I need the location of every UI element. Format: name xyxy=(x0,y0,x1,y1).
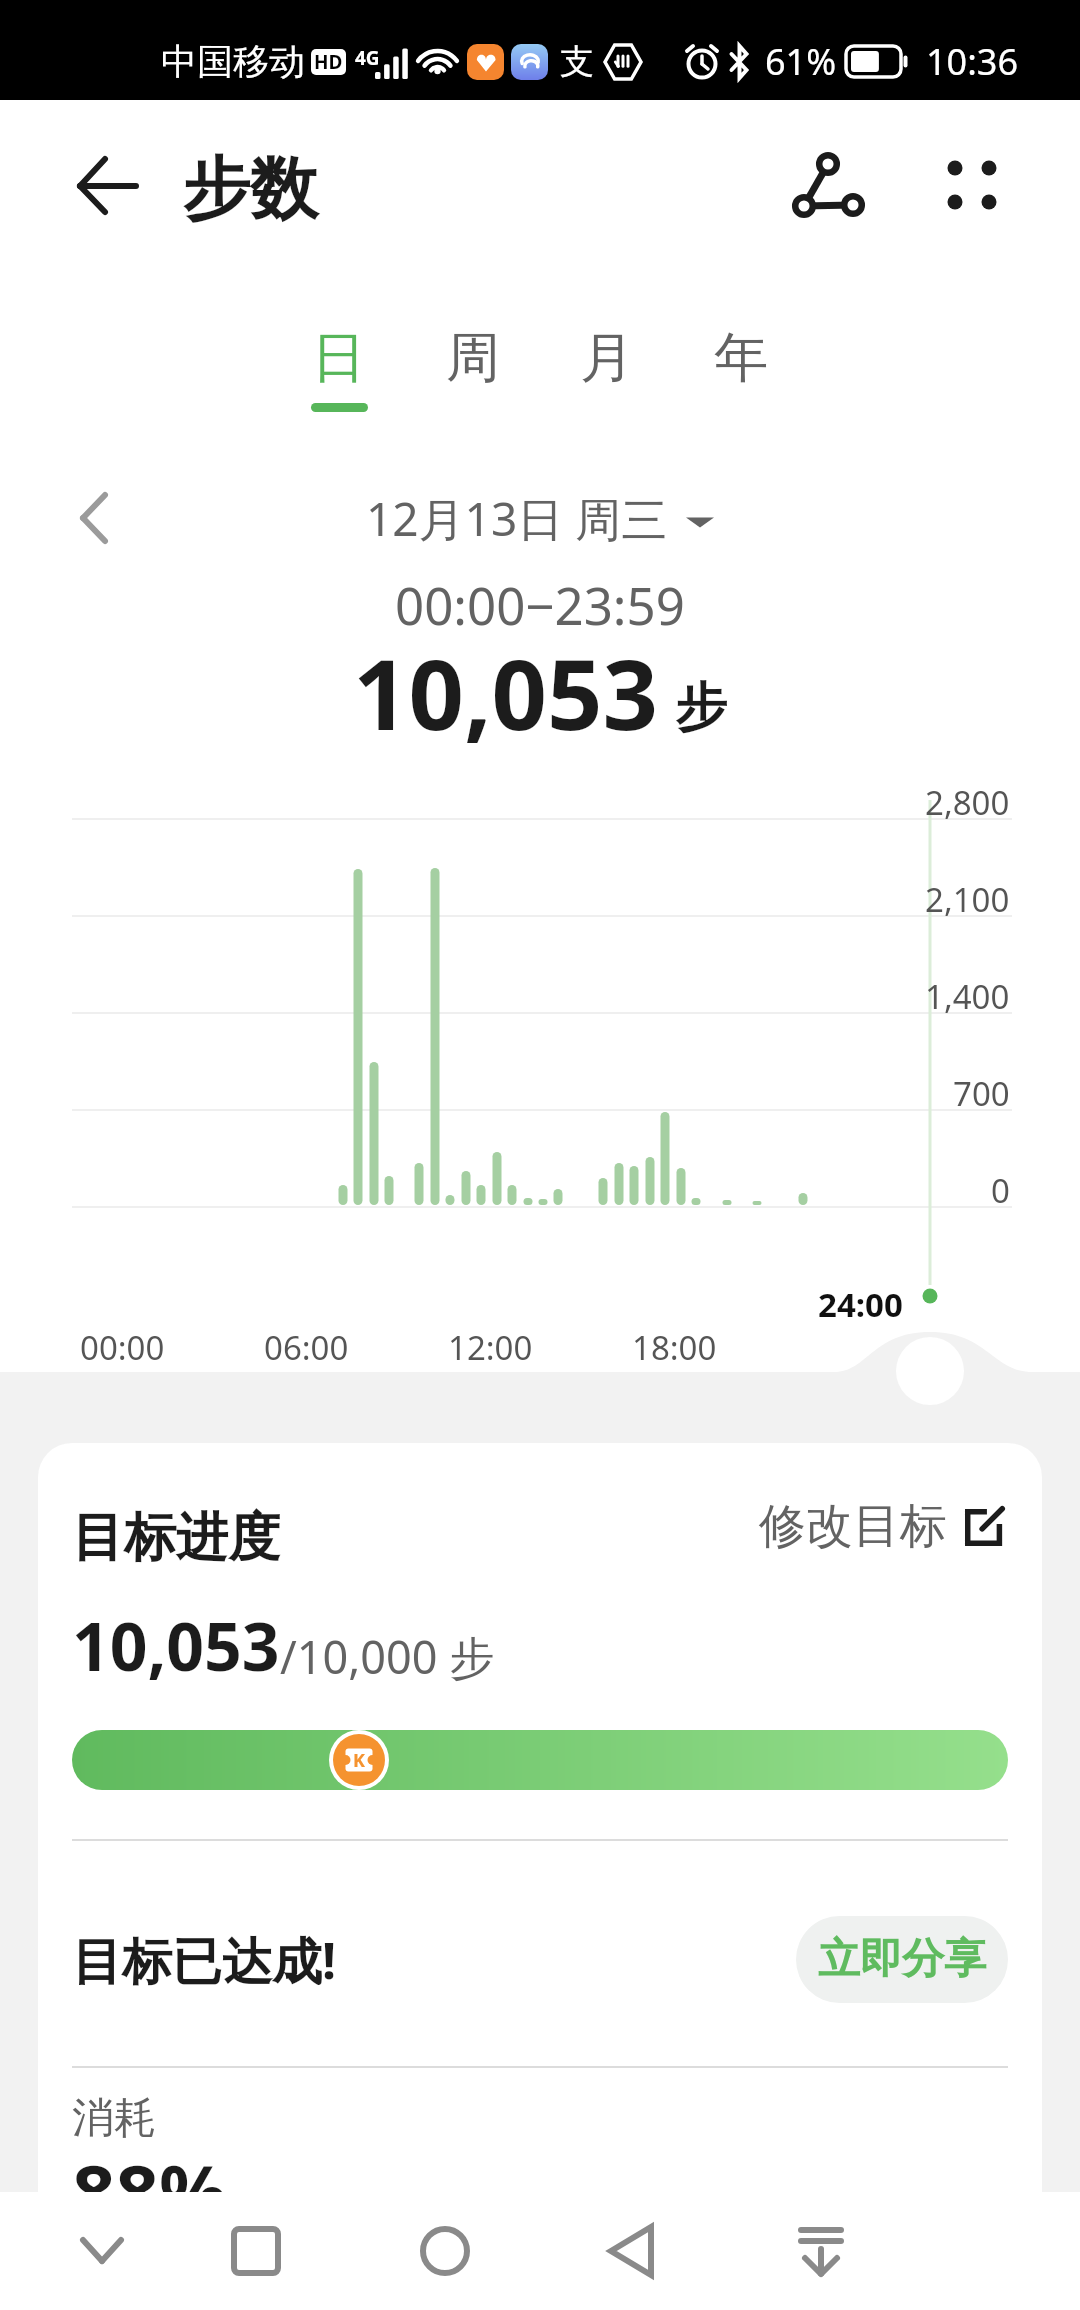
staticText: 12月13日 周三 xyxy=(366,487,668,550)
staticText: 700 xyxy=(953,1071,1010,1116)
staticText: 10:36 xyxy=(926,37,1019,86)
staticText: /10,000 步 xyxy=(280,1626,495,1687)
button[interactable]: Collapse xyxy=(60,2192,144,2310)
staticText: 中国移动 xyxy=(161,39,305,84)
button[interactable]: Home xyxy=(403,2192,487,2310)
button[interactable]: 周 xyxy=(406,324,540,412)
button[interactable]: Previous day xyxy=(62,486,126,550)
staticText: 日 xyxy=(312,324,366,392)
button[interactable]: 立即分享 xyxy=(796,1916,1008,2003)
button[interactable]: 年 xyxy=(674,324,808,412)
staticText: 立即分享 xyxy=(818,1933,986,1986)
button[interactable]: Share xyxy=(774,140,882,240)
staticText: 年 xyxy=(714,324,768,392)
staticText: 61% xyxy=(765,37,837,86)
button[interactable]: 12月13日 周三 xyxy=(366,487,714,550)
staticText: 00:00−23:59 xyxy=(395,570,685,639)
staticText: 目标进度 xyxy=(72,1505,280,1571)
staticText: 10,053 xyxy=(353,626,659,758)
staticText: 00:00 xyxy=(80,1325,165,1370)
staticText: 消耗 xyxy=(72,2092,156,2145)
staticText: 月 xyxy=(580,324,634,392)
button[interactable]: Recent apps xyxy=(214,2192,298,2310)
staticText: 周 xyxy=(446,324,500,392)
staticText: 步 xyxy=(675,675,727,741)
staticText: 支 xyxy=(560,40,594,83)
staticText: K xyxy=(353,1748,365,1773)
staticText: 修改目标 xyxy=(759,1497,947,1556)
staticText: 2,100 xyxy=(925,877,1010,922)
button[interactable]: Back xyxy=(54,140,162,240)
staticText: 06:00 xyxy=(264,1325,349,1370)
button[interactable]: 修改目标 xyxy=(759,1497,1009,1556)
staticText: 步数 xyxy=(182,147,318,233)
staticText: 12:00 xyxy=(448,1325,533,1370)
button[interactable]: 月 xyxy=(540,324,674,412)
staticText: 目标已达成! xyxy=(72,1926,337,1994)
staticText: 18:00 xyxy=(632,1325,717,1370)
staticText: 1,400 xyxy=(925,974,1010,1019)
staticText: 88% xyxy=(72,2139,228,2243)
button[interactable]: Hide navigation bar xyxy=(779,2192,863,2310)
button[interactable]: More options xyxy=(920,140,1028,240)
staticText: 2,800 xyxy=(925,780,1010,825)
staticText: 4G xyxy=(355,45,380,71)
staticText: 0 xyxy=(991,1168,1010,1213)
button[interactable]: Back xyxy=(589,2192,673,2310)
staticText: HD xyxy=(314,49,343,75)
button[interactable]: 日 xyxy=(272,324,406,412)
staticText: 24:00 xyxy=(818,1282,903,1327)
staticText: 10,053 xyxy=(72,1600,280,1690)
